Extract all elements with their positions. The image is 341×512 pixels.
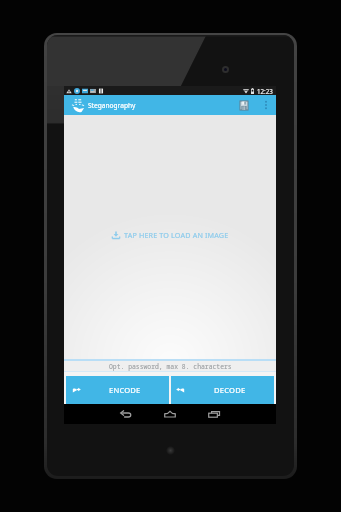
staticText: 12:23 xyxy=(257,87,273,95)
button[interactable]: DECODE xyxy=(171,376,274,404)
button[interactable]: More options xyxy=(257,95,275,115)
staticText: TAP HERE TO LOAD AN IMAGE xyxy=(124,230,229,240)
staticText: DECODE xyxy=(214,385,246,395)
button[interactable]: Recents xyxy=(204,404,224,424)
button[interactable]: Home xyxy=(160,404,180,424)
staticText: Opt. password, max 8. characters xyxy=(109,362,232,371)
button[interactable]: Save xyxy=(234,95,254,115)
button[interactable]: TAP HERE TO LOAD AN IMAGE xyxy=(112,230,229,240)
button[interactable]: Opt. password, max 8. characters xyxy=(64,361,276,372)
staticText: Steganography xyxy=(88,101,136,110)
button[interactable]: ENCODE xyxy=(66,376,169,404)
staticText: ENCODE xyxy=(109,385,141,395)
button[interactable]: Back xyxy=(116,404,136,424)
